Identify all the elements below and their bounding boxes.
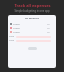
button[interactable]: Food xyxy=(8,39,56,42)
staticText: Food xyxy=(9,39,15,42)
staticText: 12 xyxy=(47,31,50,34)
button[interactable]: Coffee xyxy=(8,22,56,26)
button[interactable]: Coffee xyxy=(8,30,56,34)
staticText: Track all expenses xyxy=(14,3,51,8)
button[interactable]: Coffee xyxy=(8,26,56,30)
staticText: Coffee xyxy=(13,23,20,26)
button[interactable]: Food xyxy=(8,35,56,38)
staticText: Food xyxy=(9,35,15,38)
staticText: 12 xyxy=(47,27,50,30)
staticText: Coffee xyxy=(13,27,20,30)
staticText: My Expenses xyxy=(25,17,39,20)
staticText: Simple budgeting in one app xyxy=(14,9,50,13)
button[interactable]: Add expense xyxy=(28,47,37,50)
staticText: Coffee xyxy=(13,31,20,34)
staticText: 12 xyxy=(47,23,50,26)
